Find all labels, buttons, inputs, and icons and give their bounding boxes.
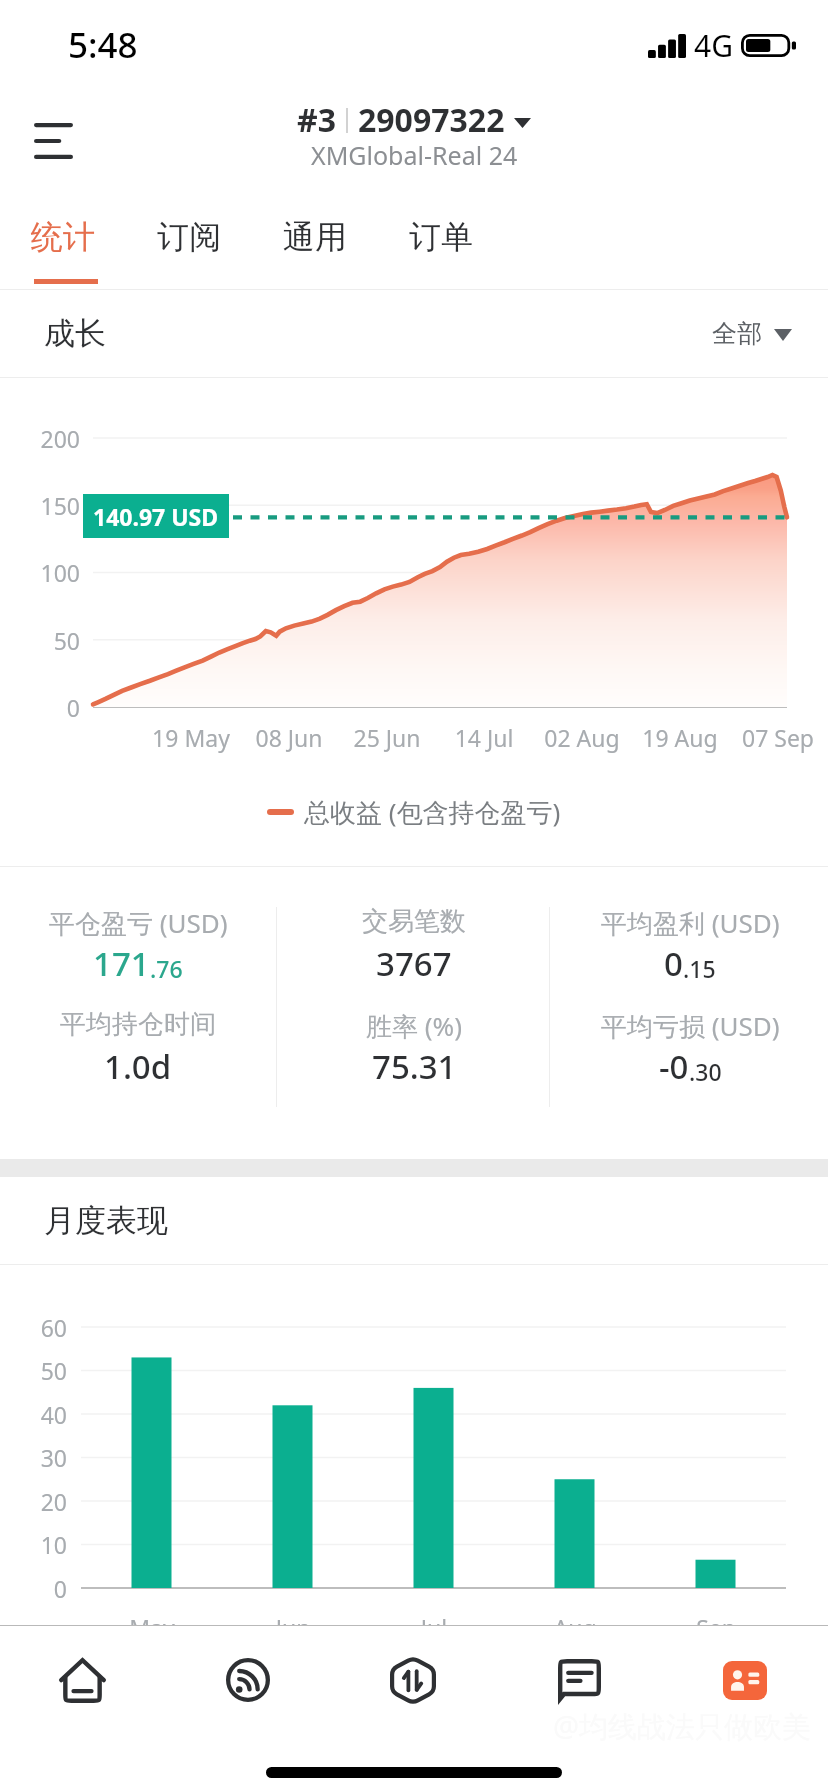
staticText: Aug [515,1612,635,1643]
button[interactable]: #3 [297,92,531,172]
staticText: 全部 [712,318,762,349]
staticText: 60 [0,1312,67,1343]
staticText: 订阅 [157,217,221,257]
staticText: 成长 [44,314,106,353]
staticText: May [92,1612,212,1643]
staticText: 07 Sep [718,722,828,753]
staticText: #3 [297,98,336,142]
staticText: 200 [0,423,80,454]
staticText: 100 [0,557,80,588]
button[interactable]: Home [0,1626,165,1738]
button[interactable]: 订阅 [126,194,252,289]
staticText: 20 [0,1486,67,1517]
staticText: Jun [233,1612,353,1643]
staticText: 25 Jun [327,722,447,753]
staticText: 75.31 [372,1044,457,1089]
button[interactable]: 订单 [378,194,504,289]
staticText: 14 Jul [424,722,544,753]
button[interactable]: 通用 [252,194,378,289]
staticText: 140.97 USD [93,501,219,532]
staticText: 月度表现 [44,1201,168,1240]
staticText: 1.0d [104,1044,172,1089]
staticText: 19 May [131,722,251,753]
staticText: 0 [664,941,683,986]
staticText: 平均盈利 (USD) [601,905,780,941]
staticText: 5:48 [68,21,138,69]
staticText: .30 [689,1056,722,1087]
button[interactable]: Signals [165,1626,330,1738]
button[interactable]: 全部 [712,318,792,349]
staticText: 150 [0,490,80,521]
staticText: 平均亏损 (USD) [601,1008,780,1044]
staticText: 02 Aug [522,722,642,753]
staticText: 0 [0,1573,67,1604]
button[interactable]: 统计 [0,194,126,289]
staticText: 订单 [409,217,473,257]
button[interactable]: Menu [17,105,89,177]
staticText: Jul [374,1612,494,1643]
staticText: 29097322 [358,98,505,142]
staticText: 171 [93,941,150,986]
staticText: 50 [0,625,80,656]
staticText: 统计 [31,217,95,257]
staticText: .76 [150,953,183,984]
staticText: 30 [0,1442,67,1473]
staticText: 10 [0,1529,67,1560]
staticText: 通用 [283,217,347,257]
staticText: 0 [0,692,80,723]
staticText: 平仓盈亏 (USD) [49,905,228,941]
staticText: 平均持仓时间 [60,1008,216,1041]
button[interactable]: Profile [662,1626,828,1738]
button[interactable]: Chat [496,1626,662,1738]
staticText: XMGlobal-Real 24 [311,138,518,172]
staticText: -0 [659,1044,689,1089]
staticText: 50 [0,1355,67,1386]
button[interactable]: Trade [330,1626,496,1738]
staticText: 3767 [376,941,452,986]
staticText: 19 Aug [620,722,740,753]
staticText: .15 [683,953,716,984]
staticText: 40 [0,1399,67,1430]
staticText: 08 Jun [229,722,349,753]
staticText: 胜率 (%) [366,1008,462,1044]
staticText: Sep [656,1612,776,1643]
staticText: 4G [694,25,733,66]
staticText: 交易笔数 [362,905,466,938]
staticText: 总收益 (包含持仓盈亏) [304,794,561,830]
